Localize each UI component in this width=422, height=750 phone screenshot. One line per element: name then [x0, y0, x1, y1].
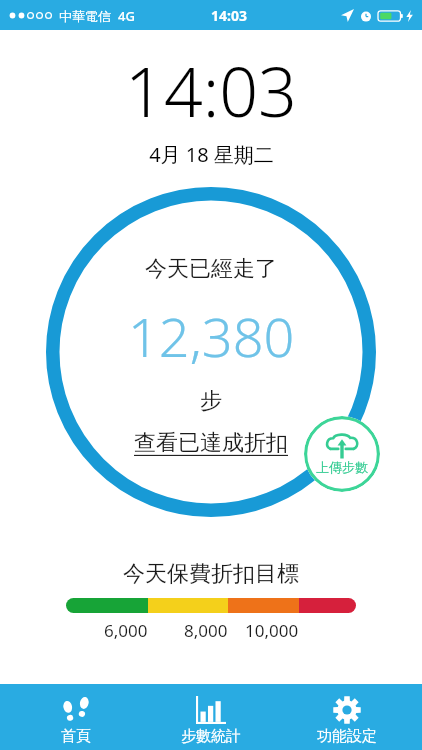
staticText: 8,000 [184, 619, 228, 642]
staticText: 14:03 [125, 44, 297, 137]
staticText: 首頁 [61, 727, 91, 746]
staticText: 12,380 [128, 299, 295, 373]
staticText: 今天保費折扣目標 [123, 560, 299, 588]
staticText: 10,000 [245, 619, 299, 642]
button[interactable]: 功能設定 [287, 684, 407, 750]
button[interactable]: 首頁 [16, 684, 136, 750]
staticText: 上傳步數 [316, 459, 368, 475]
staticText: 今天已經走了 [145, 255, 277, 283]
button[interactable]: 步數統計 [151, 684, 271, 750]
staticText: 功能設定 [317, 727, 377, 746]
staticText: 6,000 [104, 619, 148, 642]
staticText: 查看已達成折扣 [134, 429, 288, 457]
button[interactable]: 查看已達成折扣 [130, 427, 292, 459]
button[interactable]: 上傳步數 [304, 416, 380, 492]
staticText: 步 [200, 387, 222, 415]
staticText: 4G [118, 7, 135, 25]
staticText: 中華電信 [59, 8, 111, 24]
staticText: 14:03 [211, 6, 247, 25]
staticText: 4月 18 星期二 [149, 141, 274, 168]
staticText: 步數統計 [181, 727, 241, 746]
